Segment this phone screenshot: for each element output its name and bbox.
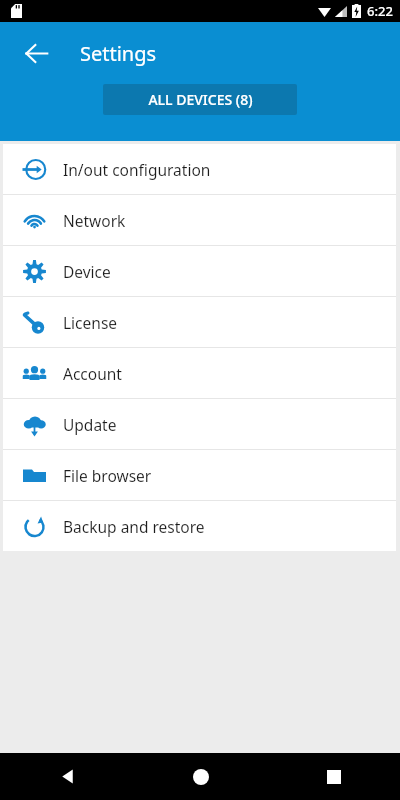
staticText: ALL DEVICES (8) bbox=[148, 90, 253, 109]
staticText: Network bbox=[63, 210, 126, 231]
staticText: 6:22 bbox=[367, 2, 393, 20]
button[interactable]: Home bbox=[134, 753, 267, 800]
staticText: Update bbox=[63, 414, 117, 435]
staticText: Device bbox=[63, 261, 111, 282]
button[interactable]: License bbox=[3, 297, 396, 347]
button[interactable]: Update bbox=[3, 399, 396, 449]
button[interactable]: File browser bbox=[3, 450, 396, 500]
staticText: In/out configuration bbox=[63, 159, 211, 180]
button[interactable]: Back bbox=[0, 753, 134, 800]
button[interactable]: In/out configuration bbox=[3, 144, 396, 194]
button[interactable]: Network bbox=[3, 195, 396, 245]
staticText: Account bbox=[63, 363, 122, 384]
button[interactable]: Back bbox=[12, 29, 60, 77]
staticText: Backup and restore bbox=[63, 516, 205, 537]
staticText: License bbox=[63, 312, 118, 333]
button[interactable]: Account bbox=[3, 348, 396, 398]
staticText: File browser bbox=[63, 465, 152, 486]
button[interactable]: Backup and restore bbox=[3, 501, 396, 551]
button[interactable]: Device bbox=[3, 246, 396, 296]
staticText: Settings bbox=[80, 40, 157, 67]
button[interactable]: ALL DEVICES (8) bbox=[103, 84, 297, 115]
button[interactable]: Recent apps bbox=[267, 753, 400, 800]
